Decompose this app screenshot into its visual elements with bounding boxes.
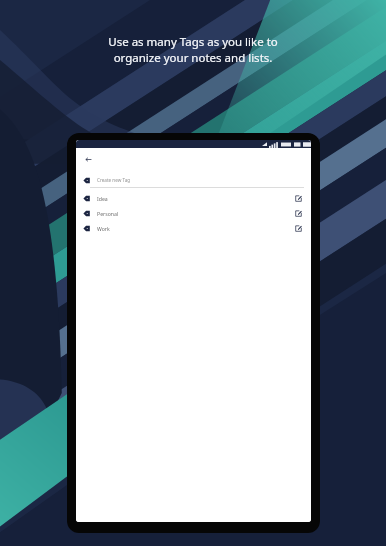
staticText: Work [97, 225, 110, 232]
button[interactable]: Create new Tag [76, 173, 311, 187]
button[interactable]: Edit Idea [293, 193, 304, 204]
staticText: Use as many Tags as you like to organize… [26, 34, 360, 65]
staticText: Create new Tag [97, 177, 131, 183]
staticText: Idea [97, 195, 108, 202]
staticText: Personal [97, 210, 119, 217]
button[interactable]: Back [82, 153, 94, 165]
button[interactable]: Personal [76, 206, 311, 221]
button[interactable]: Work [76, 221, 311, 236]
button[interactable]: Edit Personal [293, 208, 304, 219]
button[interactable]: Idea [76, 191, 311, 206]
button[interactable]: Edit Work [293, 223, 304, 234]
